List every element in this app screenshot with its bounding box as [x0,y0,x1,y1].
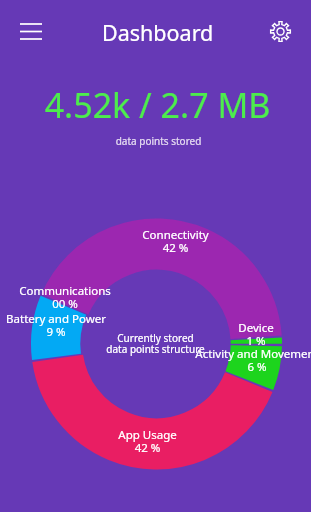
staticText: data points stored [3,134,311,148]
staticText: Currently stored data points structure [106,331,205,356]
staticText: Connectivity 42 % [142,227,209,256]
staticText: Battery and Power 9 % [6,311,106,340]
staticText: 4.52k / 2.7 MB [2,82,311,128]
staticText: Activity and Movement 6 % [195,346,311,375]
staticText: Communications 00 % [19,283,111,312]
button[interactable]: Open navigation menu [9,9,53,53]
button[interactable]: Settings [258,9,302,53]
staticText: App Usage 42 % [118,427,177,456]
staticText: Dashboard [102,18,214,47]
staticText: Device 1 % [238,320,274,349]
